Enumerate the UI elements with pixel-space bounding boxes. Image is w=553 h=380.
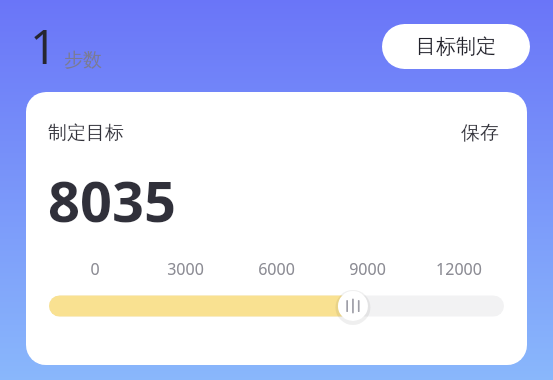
staticText: 制定目标 xyxy=(48,121,124,145)
button[interactable]: 保存 xyxy=(457,118,503,148)
button[interactable]: 目标制定 xyxy=(382,24,530,69)
button[interactable]: Step goal slider xyxy=(49,289,504,323)
staticText: 目标制定 xyxy=(416,34,496,59)
staticText: 0 xyxy=(90,258,100,280)
staticText: 步数 xyxy=(64,48,102,72)
staticText: 1 xyxy=(30,14,57,78)
staticText: 6000 xyxy=(258,258,295,280)
staticText: 保存 xyxy=(461,121,499,145)
staticText: 8035 xyxy=(48,162,177,238)
staticText: 12000 xyxy=(436,258,482,280)
staticText: 3000 xyxy=(167,258,204,280)
staticText: 9000 xyxy=(349,258,386,280)
